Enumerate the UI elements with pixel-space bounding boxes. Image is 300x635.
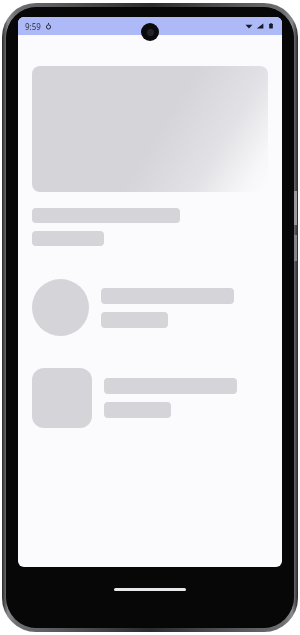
button[interactable]: [32, 279, 268, 336]
staticText: 9:59: [25, 21, 41, 32]
button[interactable]: [32, 368, 268, 428]
button[interactable]: Home: [114, 588, 186, 591]
button[interactable]: [32, 66, 268, 192]
